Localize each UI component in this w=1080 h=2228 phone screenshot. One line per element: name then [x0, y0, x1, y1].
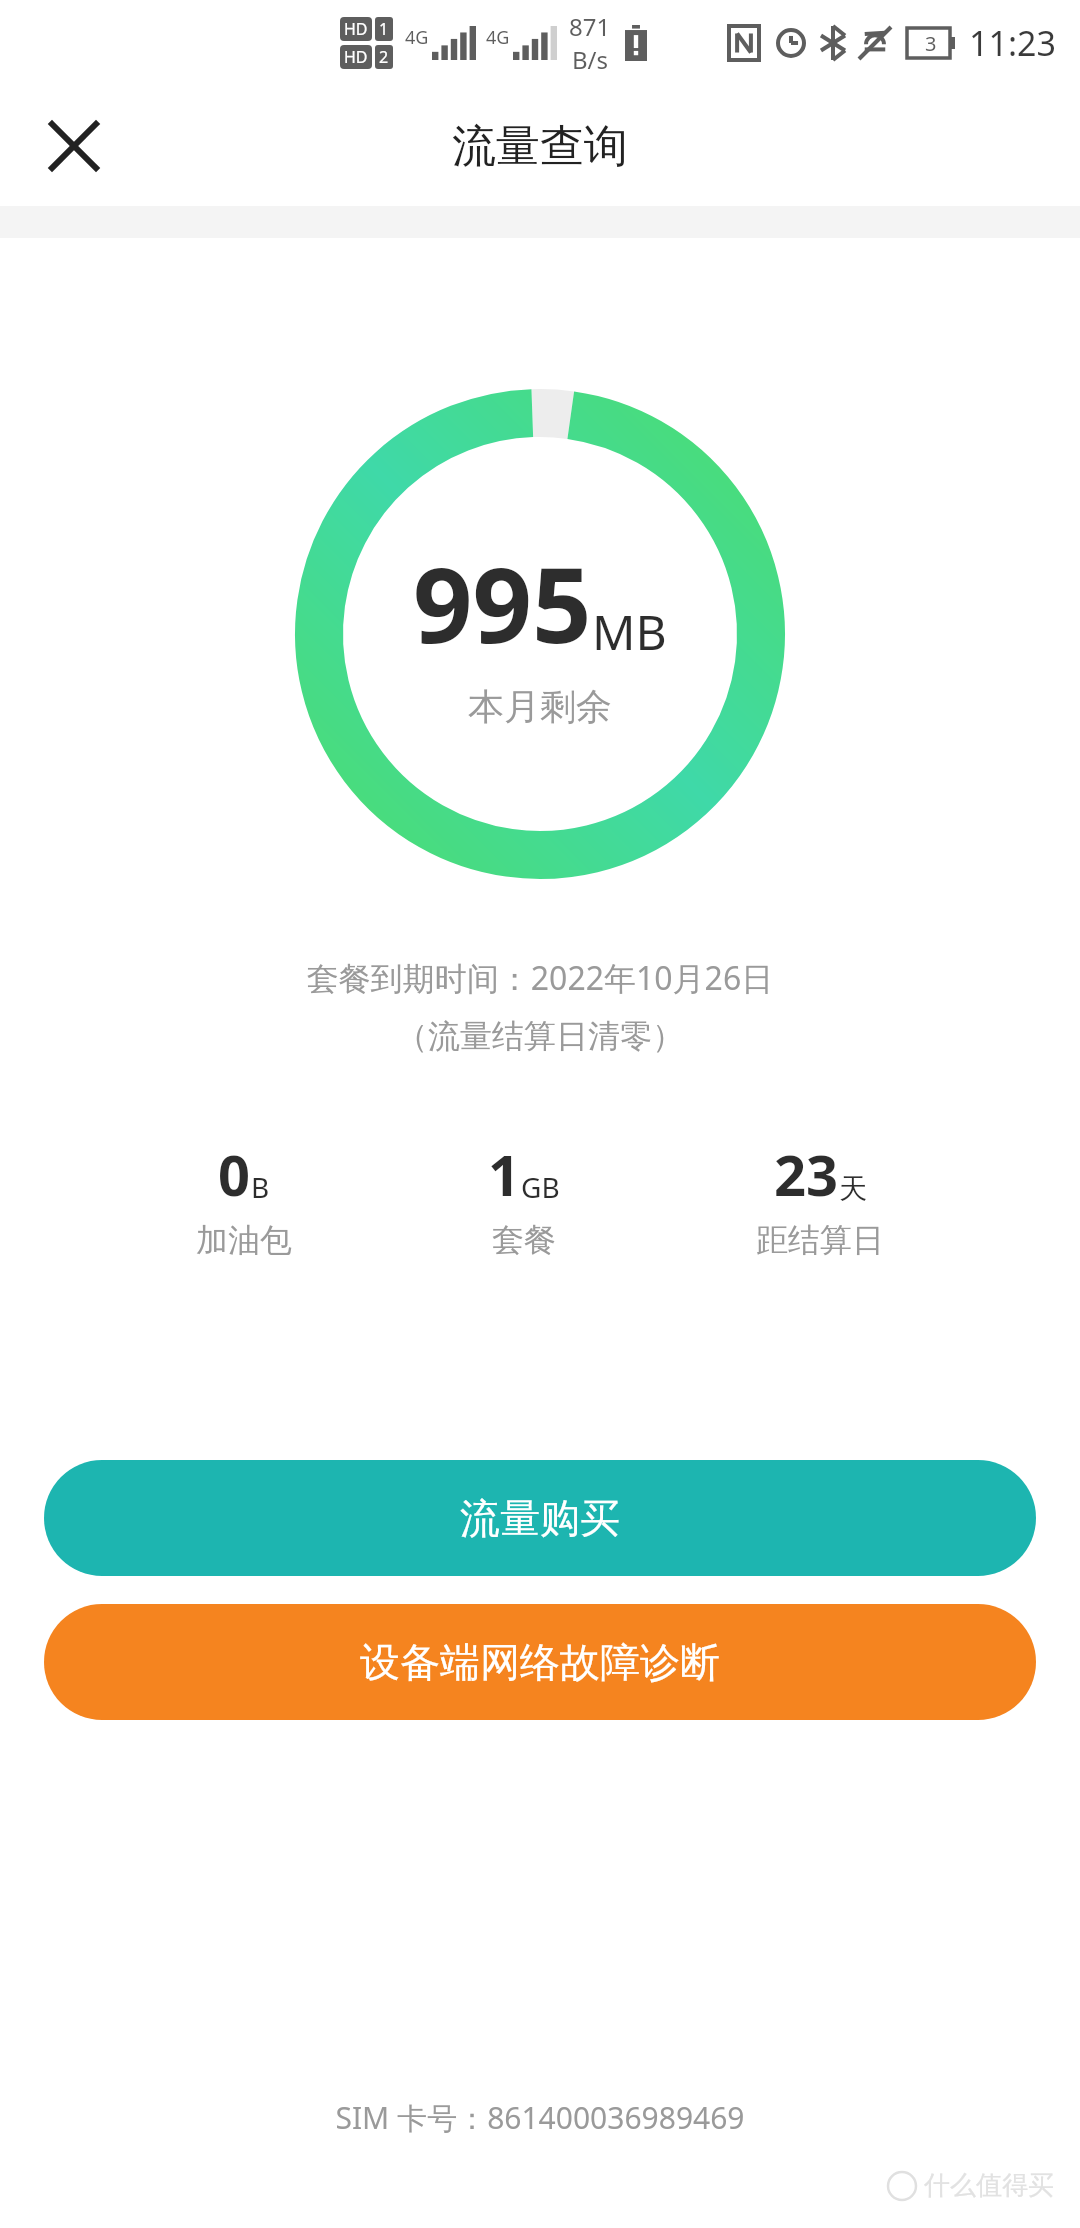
staticText: 距结算日: [756, 1220, 884, 1260]
staticText: 995: [413, 532, 592, 674]
button[interactable]: 设备端网络故障诊断: [44, 1604, 1036, 1720]
staticText: 4G: [486, 25, 510, 50]
button[interactable]: Close: [34, 106, 114, 186]
staticText: 加油包: [196, 1220, 292, 1260]
staticText: 0: [218, 1136, 251, 1212]
staticText: 套餐到期时间：2022年10月26日: [0, 956, 1080, 1000]
staticText: GB: [521, 1168, 560, 1206]
staticText: 流量购买: [460, 1493, 620, 1543]
staticText: （流量结算日清零）: [0, 1016, 1080, 1056]
staticText: 4G: [405, 25, 429, 50]
staticText: 流量查询: [452, 119, 628, 174]
staticText: HD: [344, 46, 368, 68]
staticText: 天: [839, 1171, 867, 1206]
staticText: 1: [488, 1136, 521, 1212]
staticText: 23: [774, 1136, 839, 1212]
staticText: 本月剩余: [468, 684, 612, 729]
staticText: 2: [379, 46, 389, 68]
staticText: B/s: [572, 43, 609, 76]
staticText: 871: [569, 10, 611, 43]
button[interactable]: 流量购买: [44, 1460, 1036, 1576]
staticText: 1: [379, 18, 389, 40]
staticText: B: [251, 1168, 270, 1206]
staticText: 11:23: [969, 20, 1056, 66]
staticText: MB: [592, 599, 667, 664]
staticText: SIM 卡号：861400036989469: [0, 2097, 1080, 2138]
staticText: 设备端网络故障诊断: [360, 1637, 720, 1687]
staticText: 3: [925, 30, 937, 57]
staticText: 套餐: [492, 1220, 556, 1260]
staticText: 什么值得买: [924, 2169, 1054, 2202]
staticText: HD: [344, 18, 368, 40]
